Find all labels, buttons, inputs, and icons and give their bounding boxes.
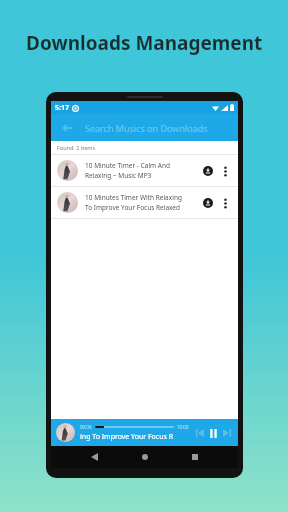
staticText: 5:17 (55, 103, 69, 113)
button[interactable]: Next (220, 426, 233, 439)
staticText: Search Musics on Downloads (85, 122, 208, 134)
button[interactable]: More options (218, 196, 232, 210)
staticText: 10 Minutes Timer With Relaxing (85, 193, 182, 202)
staticText: 10:00 (177, 424, 189, 430)
staticText: 10 Minute Timer - Calm And (85, 161, 170, 170)
button[interactable]: Downloaded (201, 196, 215, 210)
button[interactable]: Back (59, 120, 75, 136)
staticText: ing To Improve Your Focus R (80, 432, 174, 442)
button[interactable]: Home (137, 449, 153, 465)
staticText: To Improve Your Focus Relaxed (85, 203, 181, 212)
staticText: Found: 2 items (57, 144, 96, 151)
staticText: Downloads Management (26, 30, 263, 56)
button[interactable]: 10 Minutes Timer With Relaxing (51, 187, 238, 218)
button[interactable]: Previous (193, 426, 206, 439)
button[interactable]: 00:06 (51, 419, 238, 446)
button[interactable]: 10 Minute Timer - Calm And (51, 155, 238, 186)
staticText: Relaxing ~ Music MP3 (85, 171, 152, 180)
button[interactable]: Back (86, 449, 102, 465)
button[interactable]: Pause (206, 426, 220, 440)
staticText: 00:06 (80, 424, 92, 430)
button[interactable]: Downloaded (201, 164, 215, 178)
button[interactable]: More options (218, 164, 232, 178)
button[interactable]: Recents (187, 449, 203, 465)
button[interactable]: Search Musics on Downloads (85, 122, 230, 134)
